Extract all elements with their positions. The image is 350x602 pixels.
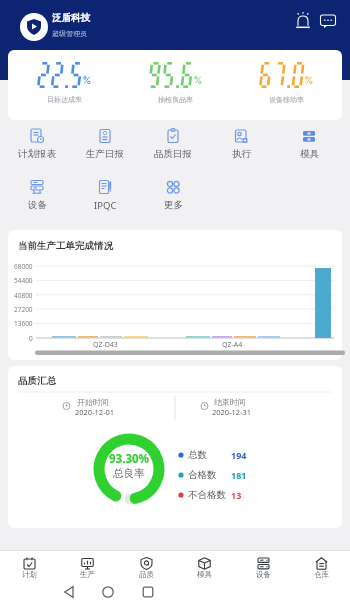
- button[interactable]: [293, 11, 313, 31]
- button[interactable]: 品质: [117, 557, 175, 580]
- button[interactable]: 模具: [175, 557, 233, 580]
- staticText: 模具: [300, 148, 319, 160]
- staticText: 品质汇总: [18, 375, 56, 387]
- staticText: 总良率: [113, 467, 145, 480]
- staticText: 计划: [22, 570, 37, 579]
- staticText: 模具: [197, 570, 212, 579]
- staticText: 13: [231, 489, 242, 501]
- staticText: 当前生产工单完成情况: [18, 240, 113, 252]
- button[interactable]: 仓库: [292, 557, 350, 580]
- button[interactable]: IPQC: [71, 179, 139, 212]
- staticText: 设备: [28, 199, 47, 211]
- button[interactable]: 生产日报: [71, 128, 139, 160]
- staticText: QZ-A4: [222, 340, 243, 350]
- staticText: 13600: [14, 319, 33, 328]
- staticText: 生产: [80, 570, 95, 579]
- staticText: 194: [231, 449, 247, 461]
- staticText: 抽检良品率: [158, 95, 193, 104]
- button[interactable]: 品质日报: [139, 128, 207, 160]
- staticText: 品质: [139, 570, 154, 579]
- button[interactable]: 执行: [207, 128, 275, 160]
- button[interactable]: 模具: [275, 128, 343, 160]
- staticText: 设备移动率: [269, 95, 304, 104]
- staticText: 品质日报: [154, 148, 192, 160]
- staticText: 93.30%: [109, 451, 149, 467]
- button[interactable]: 设备: [234, 557, 292, 580]
- staticText: 2020-12-31: [212, 407, 252, 417]
- staticText: 合格数: [188, 469, 217, 481]
- staticText: 结束时间: [214, 397, 246, 407]
- staticText: 54400: [14, 276, 33, 285]
- button[interactable]: [183, 393, 303, 421]
- staticText: 超级管理员: [52, 29, 87, 38]
- staticText: 仓库: [314, 570, 329, 579]
- staticText: 目标达成率: [47, 95, 82, 104]
- staticText: 40800: [14, 291, 33, 300]
- staticText: 生产日报: [86, 148, 124, 160]
- staticText: 2020-12-01: [75, 407, 115, 417]
- staticText: 计划报表: [18, 148, 56, 160]
- staticText: 执行: [232, 148, 251, 160]
- button[interactable]: 生产: [58, 557, 116, 580]
- staticText: QZ-D43: [93, 340, 118, 350]
- button[interactable]: 计划报表: [3, 128, 71, 160]
- button[interactable]: [319, 12, 337, 30]
- staticText: 更多: [164, 199, 183, 211]
- staticText: 27200: [14, 305, 33, 314]
- staticText: 不合格数: [188, 489, 226, 501]
- staticText: 181: [231, 469, 247, 481]
- button[interactable]: 设备: [3, 179, 71, 211]
- button[interactable]: 更多: [139, 179, 207, 211]
- button[interactable]: 计划: [0, 557, 58, 580]
- staticText: 68000: [14, 262, 33, 271]
- staticText: 开始时间: [77, 397, 109, 407]
- staticText: 泛盾科技: [52, 12, 90, 24]
- staticText: 0: [29, 334, 33, 343]
- staticText: 设备: [256, 570, 271, 579]
- button[interactable]: [48, 393, 168, 421]
- staticText: IPQC: [94, 199, 117, 212]
- staticText: 总数: [188, 449, 207, 461]
